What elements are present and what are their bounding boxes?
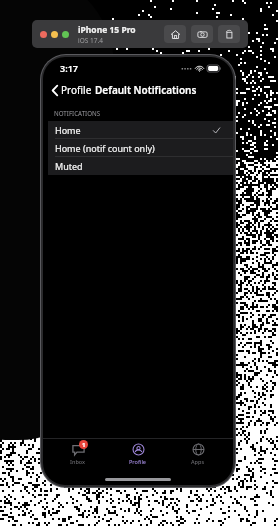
staticText: Inbox bbox=[70, 458, 86, 465]
staticText: iOS 17.4 bbox=[78, 36, 103, 45]
staticText: NOTIFICATIONS bbox=[54, 109, 101, 117]
staticText: Profile bbox=[129, 458, 147, 465]
button[interactable]: Profile bbox=[113, 441, 163, 465]
button[interactable]: Screenshot bbox=[191, 25, 213, 43]
staticText: Default Notifications bbox=[95, 83, 197, 97]
button[interactable]: Home bbox=[164, 25, 186, 43]
staticText: iPhone 15 Pro bbox=[78, 24, 136, 36]
staticText: 1 bbox=[82, 441, 86, 449]
button[interactable] bbox=[40, 31, 47, 38]
button[interactable]: 1 bbox=[53, 441, 103, 465]
button[interactable]: Home bbox=[48, 121, 233, 139]
staticText: 3:17 bbox=[60, 62, 78, 74]
button[interactable]: Home (notif count only) bbox=[48, 139, 233, 157]
button[interactable]: Muted bbox=[48, 157, 233, 175]
button[interactable]: Apps bbox=[173, 441, 223, 465]
staticText: Profile bbox=[61, 83, 92, 97]
button[interactable] bbox=[51, 31, 58, 38]
button[interactable]: Profile bbox=[49, 81, 95, 99]
button[interactable] bbox=[62, 31, 69, 38]
staticText: Muted bbox=[55, 160, 83, 172]
button[interactable]: Rotate bbox=[218, 25, 240, 43]
staticText: Apps bbox=[191, 458, 205, 465]
staticText: Home bbox=[55, 124, 81, 136]
staticText: Home (notif count only) bbox=[55, 142, 155, 154]
